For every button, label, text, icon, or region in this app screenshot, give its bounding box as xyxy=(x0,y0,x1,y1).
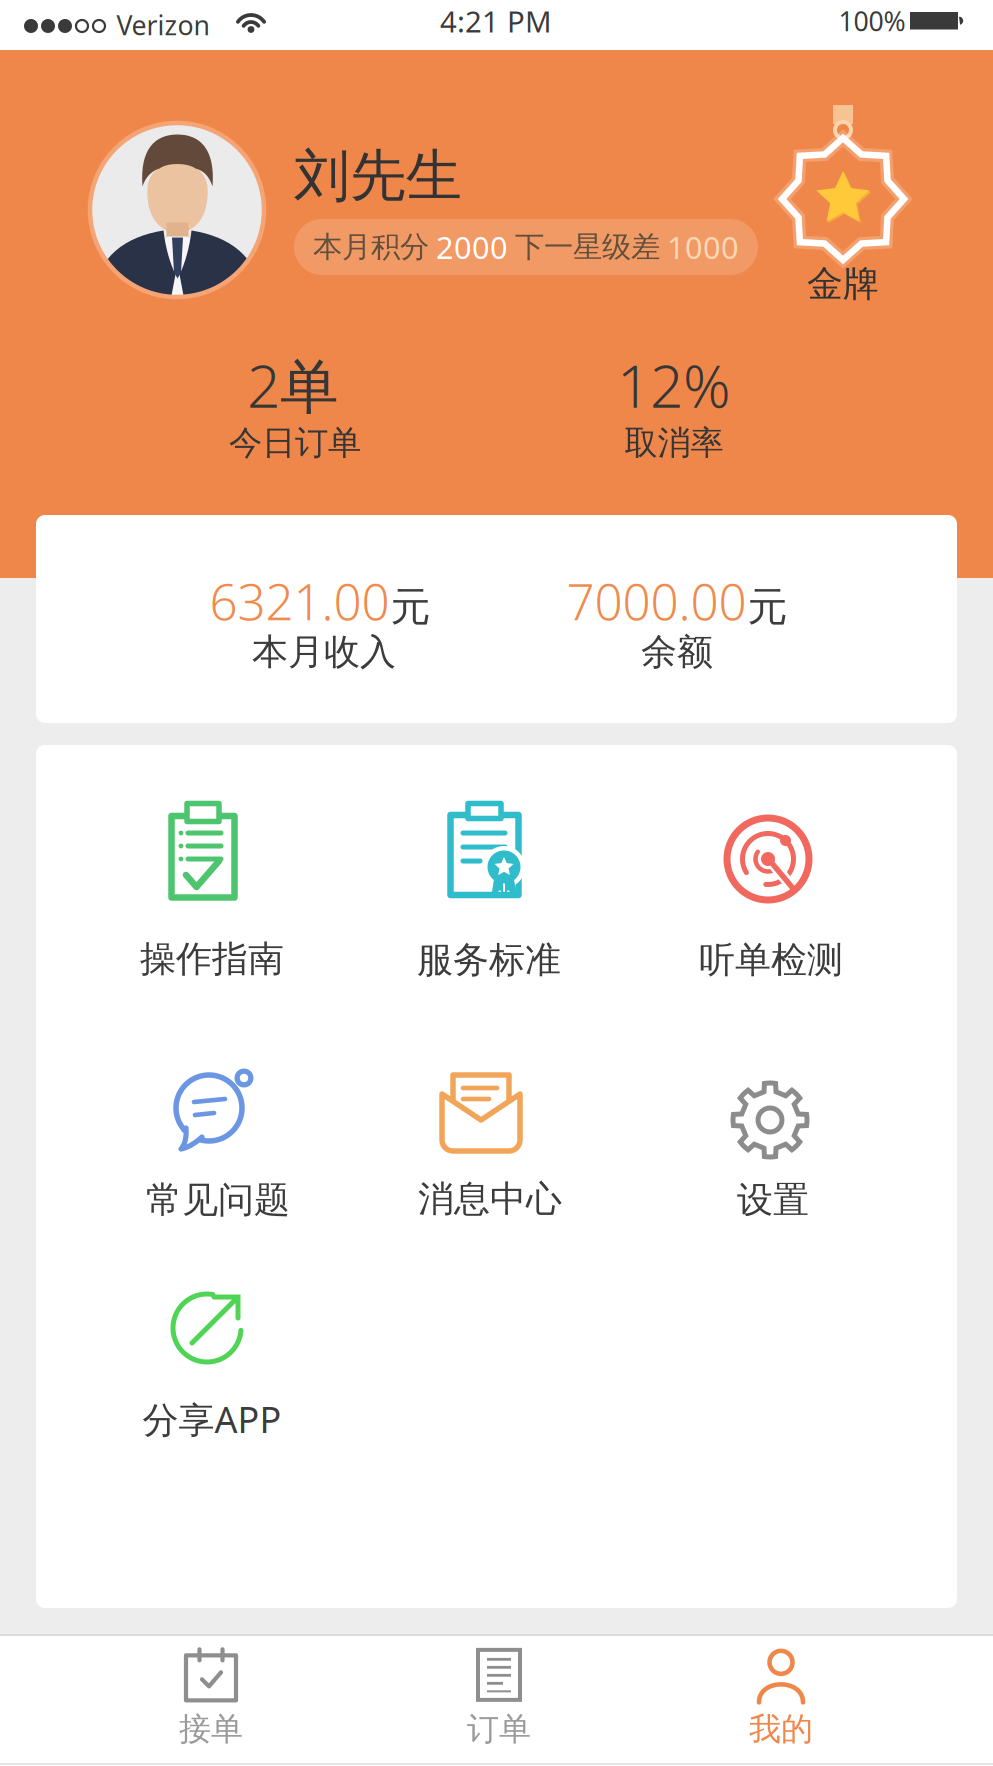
staticText: 12% xyxy=(617,346,731,424)
staticText: 7000.00 xyxy=(566,568,746,634)
staticText: 设置 xyxy=(737,1178,809,1222)
staticText: 100% xyxy=(838,3,905,39)
button[interactable]: 常见问题 xyxy=(74,1054,354,1230)
staticText: 常见问题 xyxy=(146,1178,290,1222)
staticText: 刘先生 xyxy=(294,142,462,210)
button[interactable]: 消息中心 xyxy=(345,1058,625,1229)
button[interactable]: 本月积分 xyxy=(294,219,758,275)
button[interactable]: 操作指南 xyxy=(67,787,347,989)
staticText: 今日订单 xyxy=(229,422,361,463)
staticText: 2单 xyxy=(247,346,339,424)
staticText: 操作指南 xyxy=(140,937,284,981)
button[interactable]: 订单 xyxy=(349,1634,649,1762)
button[interactable]: 分享APP xyxy=(71,1268,351,1449)
button[interactable]: 设置 xyxy=(631,1066,911,1230)
staticText: 取消率 xyxy=(624,422,723,463)
staticText: 元 xyxy=(747,582,787,631)
staticText: 元 xyxy=(390,582,430,631)
staticText: 2000 xyxy=(436,227,508,267)
staticText: 余额 xyxy=(641,630,713,674)
button[interactable]: 服务标准 xyxy=(347,789,627,990)
staticText: 我的 xyxy=(749,1709,813,1749)
staticText: 分享APP xyxy=(142,1395,281,1443)
staticText: 消息中心 xyxy=(418,1177,562,1221)
staticText: 下一星级差 xyxy=(515,229,660,265)
button[interactable]: 接单 xyxy=(61,1634,361,1762)
staticText: 服务标准 xyxy=(417,938,561,982)
button[interactable]: 我的 xyxy=(631,1634,931,1762)
staticText: 接单 xyxy=(179,1709,243,1749)
staticText: 本月积分 xyxy=(313,229,429,265)
button[interactable]: 6321.00 xyxy=(209,568,430,634)
staticText: 订单 xyxy=(467,1709,531,1749)
staticText: 金牌 xyxy=(807,262,879,306)
staticText: 本月收入 xyxy=(252,630,396,674)
button[interactable]: 听单检测 xyxy=(629,799,909,990)
staticText: 4:21 PM xyxy=(440,1,552,40)
staticText: 1000 xyxy=(667,227,739,267)
staticText: 听单检测 xyxy=(699,938,843,982)
staticText: 6321.00 xyxy=(209,568,389,634)
button[interactable]: 7000.00 xyxy=(566,568,787,634)
staticText: Verizon xyxy=(116,7,209,43)
